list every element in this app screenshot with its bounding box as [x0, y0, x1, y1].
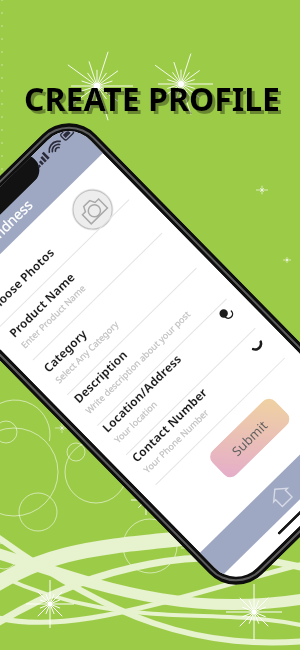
button[interactable]: Category [27, 229, 207, 406]
button[interactable]: Choose photos [63, 180, 122, 239]
button[interactable]: Product Name [0, 194, 172, 372]
staticText: Wall Of Kindness [0, 195, 37, 286]
staticText: Submit [228, 416, 272, 460]
staticText: Category [40, 325, 90, 375]
staticText: Your Phone Number [141, 406, 211, 475]
staticText: CREATE PROFILE [5, 80, 300, 124]
other: Call [246, 334, 265, 354]
button[interactable]: Description [57, 259, 237, 437]
other: Pick location [216, 304, 236, 324]
button[interactable]: Home [265, 480, 297, 511]
button[interactable]: Location/Address [86, 289, 266, 466]
button[interactable]: Submit [206, 395, 293, 481]
staticText: Choose Photos [0, 244, 58, 318]
staticText: CREATE PROFILE [2, 77, 300, 121]
staticText: Description [70, 346, 130, 406]
staticText: Contact Number [128, 384, 210, 465]
staticText: Select Any Category [52, 318, 120, 385]
staticText: Write description about your post [82, 307, 193, 416]
staticText: Product Name [5, 269, 78, 340]
staticText: Enter Product Name [18, 282, 88, 350]
staticText: Your location [111, 397, 159, 445]
staticText: Location/Address [98, 350, 185, 435]
button[interactable]: Contact Number [115, 319, 295, 496]
